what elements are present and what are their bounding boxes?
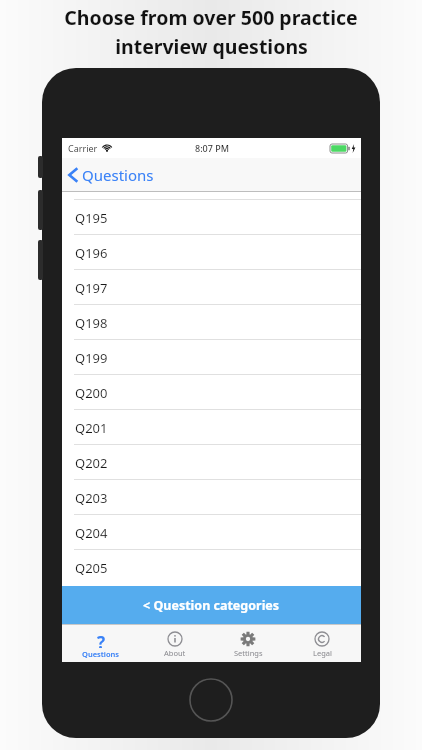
staticText: < Question categories [143, 597, 280, 614]
button[interactable]: About [140, 625, 210, 662]
button[interactable]: Q198 [62, 305, 361, 340]
staticText: Q201 [75, 419, 108, 437]
staticText: Q197 [75, 279, 108, 297]
staticText: Settings [234, 648, 263, 658]
button[interactable]: Questions [62, 161, 164, 189]
staticText: Questions [82, 165, 154, 185]
staticText: Q198 [75, 314, 108, 332]
button[interactable]: Q195 [62, 200, 361, 235]
staticText: Q195 [75, 209, 108, 227]
staticText: Questions [82, 649, 120, 659]
button[interactable]: Q196 [62, 235, 361, 270]
button[interactable]: Q204 [62, 515, 361, 550]
staticText: Q202 [75, 454, 108, 472]
button[interactable]: ? [66, 625, 136, 662]
staticText: Q203 [75, 489, 108, 507]
staticText: Q196 [75, 244, 108, 262]
staticText: ? [97, 631, 106, 648]
staticText: Q205 [75, 559, 108, 577]
button[interactable]: Settings [213, 625, 283, 662]
button[interactable]: Q202 [62, 445, 361, 480]
button[interactable]: Q200 [62, 375, 361, 410]
staticText: interview questions [115, 33, 308, 60]
button[interactable]: Q205 [62, 550, 361, 585]
staticText: About [164, 648, 186, 658]
staticText: Legal [313, 648, 332, 658]
button[interactable]: < Question categories [62, 586, 361, 624]
staticText: Q199 [75, 349, 108, 367]
staticText: Q204 [75, 524, 108, 542]
staticText: 8:07 PM [195, 142, 229, 154]
button[interactable]: Q203 [62, 480, 361, 515]
button[interactable]: Q201 [62, 410, 361, 445]
button[interactable]: Legal [287, 625, 357, 662]
staticText: Q200 [75, 384, 108, 402]
staticText: Carrier [68, 142, 98, 154]
staticText: Choose from over 500 practice [64, 4, 358, 31]
button[interactable]: Q197 [62, 270, 361, 305]
button[interactable]: Q199 [62, 340, 361, 375]
